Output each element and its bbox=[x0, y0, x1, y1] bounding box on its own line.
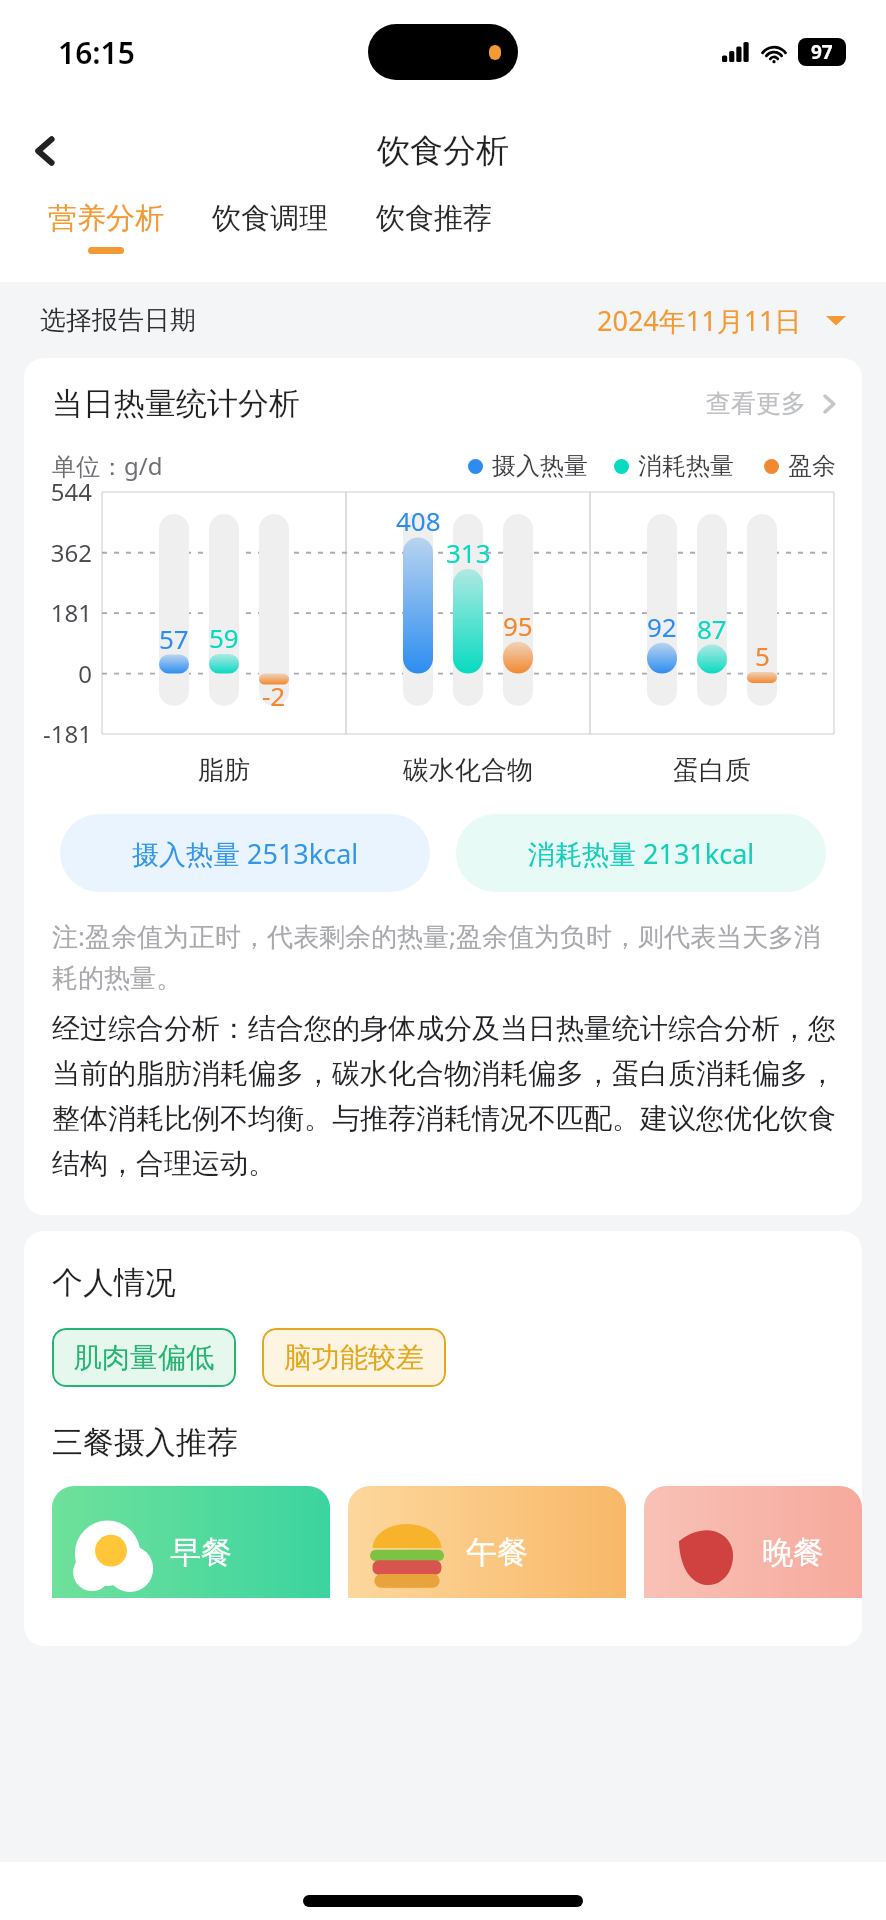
staticText: 362 bbox=[30, 536, 92, 569]
staticText: 57 bbox=[159, 621, 189, 656]
staticText: 选择报告日期 bbox=[40, 304, 196, 337]
staticText: 当日热量统计分析 bbox=[52, 384, 300, 423]
staticText: 摄入热量 bbox=[492, 451, 588, 481]
staticText: 408 bbox=[396, 503, 441, 538]
staticText: 三餐摄入推荐 bbox=[52, 1423, 238, 1462]
staticText: 饮食调理 bbox=[212, 200, 328, 237]
staticText: 饮食推荐 bbox=[376, 200, 492, 237]
staticText: 查看更多 bbox=[706, 388, 806, 419]
staticText: 碳水化合物 bbox=[403, 754, 533, 787]
staticText: 脂肪 bbox=[198, 754, 250, 787]
button[interactable]: 查看更多 bbox=[706, 388, 840, 419]
staticText: -2 bbox=[262, 678, 286, 713]
staticText: 午餐 bbox=[466, 1533, 528, 1572]
staticText: 16:15 bbox=[58, 32, 135, 73]
staticText: 消耗热量 2131kcal bbox=[528, 835, 755, 872]
staticText: 个人情况 bbox=[52, 1263, 176, 1302]
staticText: 87 bbox=[697, 611, 727, 646]
staticText: 盈余 bbox=[788, 451, 836, 481]
button[interactable]: 早餐 bbox=[52, 1486, 330, 1598]
staticText: 晚餐 bbox=[762, 1533, 824, 1572]
staticText: 营养分析 bbox=[48, 200, 164, 237]
staticText: 摄入热量 2513kcal bbox=[132, 835, 359, 872]
button[interactable]: 脑功能较差 bbox=[262, 1328, 446, 1387]
staticText: 脑功能较差 bbox=[284, 1340, 424, 1375]
staticText: 95 bbox=[503, 608, 533, 643]
staticText: 肌肉量偏低 bbox=[74, 1340, 214, 1375]
staticText: 消耗热量 bbox=[638, 451, 734, 481]
button[interactable]: Back bbox=[18, 123, 74, 179]
staticText: 0 bbox=[30, 657, 92, 690]
staticText: 92 bbox=[647, 609, 677, 644]
staticText: 蛋白质 bbox=[673, 754, 751, 787]
button[interactable]: 饮食调理 bbox=[208, 200, 332, 254]
staticText: -181 bbox=[30, 717, 92, 750]
staticText: 313 bbox=[446, 535, 491, 570]
button[interactable]: 晚餐 bbox=[644, 1486, 862, 1598]
staticText: 5 bbox=[755, 638, 770, 673]
staticText: 早餐 bbox=[170, 1533, 232, 1572]
staticText: 544 bbox=[30, 475, 92, 508]
staticText: 饮食分析 bbox=[377, 130, 509, 172]
button[interactable]: 营养分析 bbox=[44, 200, 168, 254]
button[interactable]: 消耗热量 2131kcal bbox=[456, 814, 826, 892]
staticText: 单位：g/d bbox=[52, 449, 163, 482]
button[interactable]: 饮食推荐 bbox=[372, 200, 496, 254]
button[interactable]: 肌肉量偏低 bbox=[52, 1328, 236, 1387]
staticText: 59 bbox=[209, 620, 239, 655]
button[interactable]: 选择报告日期 bbox=[40, 282, 846, 358]
staticText: 97 bbox=[811, 39, 833, 65]
button[interactable]: 摄入热量 2513kcal bbox=[60, 814, 430, 892]
button[interactable]: 午餐 bbox=[348, 1486, 626, 1598]
staticText: 经过综合分析：结合您的身体成分及当日热量统计综合分析，您当前的脂肪消耗偏多，碳水… bbox=[52, 1011, 842, 1181]
staticText: 注:盈余值为正时，代表剩余的热量;盈余值为负时，则代表当天多消耗的热量。 bbox=[52, 918, 842, 995]
staticText: 2024年11月11日 bbox=[597, 302, 802, 339]
staticText: 181 bbox=[30, 596, 92, 629]
